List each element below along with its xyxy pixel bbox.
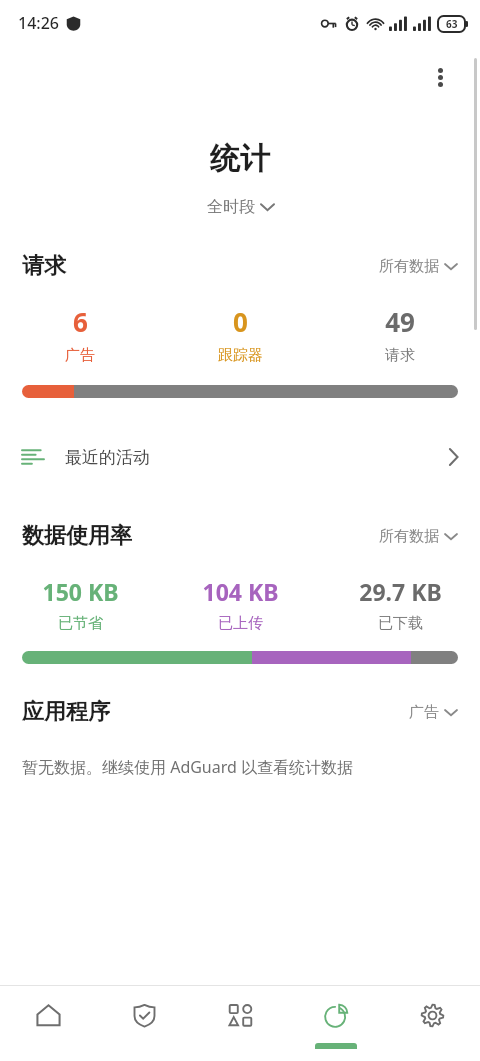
button[interactable]: 49 (320, 304, 480, 365)
staticText: 104 KB (202, 576, 279, 607)
staticText: 所有数据 (379, 527, 439, 546)
staticText: 请求 (22, 252, 66, 280)
button[interactable]: 所有数据 (374, 523, 462, 550)
button[interactable]: 6 (0, 304, 160, 365)
button[interactable]: Settings (384, 986, 480, 1061)
button[interactable]: 所有数据 (374, 253, 462, 280)
button[interactable]: 0 (160, 304, 320, 365)
button[interactable]: 全时段 (199, 194, 282, 220)
button[interactable]: 29.7 KB (320, 576, 480, 633)
staticText: 跟踪器 (218, 346, 263, 365)
staticText: 广告 (409, 703, 439, 722)
staticText: 统计 (0, 140, 480, 178)
staticText: 已下载 (378, 614, 423, 633)
staticText: 49 (385, 304, 415, 339)
staticText: 广告 (65, 346, 95, 365)
button[interactable]: More options (418, 55, 462, 99)
staticText: 全时段 (207, 197, 255, 217)
staticText: 应用程序 (22, 698, 110, 726)
staticText: 29.7 KB (359, 576, 442, 607)
staticText: 暂无数据。继续使用 AdGuard 以查看统计数据 (22, 756, 354, 778)
staticText: 已上传 (218, 614, 263, 633)
staticText: 请求 (385, 346, 415, 365)
staticText: 已节省 (58, 614, 103, 633)
button[interactable]: Apps (192, 986, 288, 1061)
button[interactable]: 104 KB (160, 576, 320, 633)
button[interactable]: 最近的活动 (0, 430, 480, 484)
staticText: 6 (73, 304, 88, 339)
staticText: 最近的活动 (65, 447, 150, 468)
button[interactable]: Protection (96, 986, 192, 1061)
staticText: 0 (233, 304, 248, 339)
button[interactable]: Home (0, 986, 96, 1061)
staticText: 150 KB (42, 576, 119, 607)
button[interactable]: Statistics (288, 986, 384, 1061)
button[interactable]: 广告 (404, 699, 462, 726)
button[interactable]: 150 KB (0, 576, 160, 633)
staticText: 63 (446, 17, 458, 31)
staticText: 数据使用率 (22, 522, 132, 550)
staticText: 所有数据 (379, 257, 439, 276)
staticText: 14:26 (18, 12, 59, 34)
